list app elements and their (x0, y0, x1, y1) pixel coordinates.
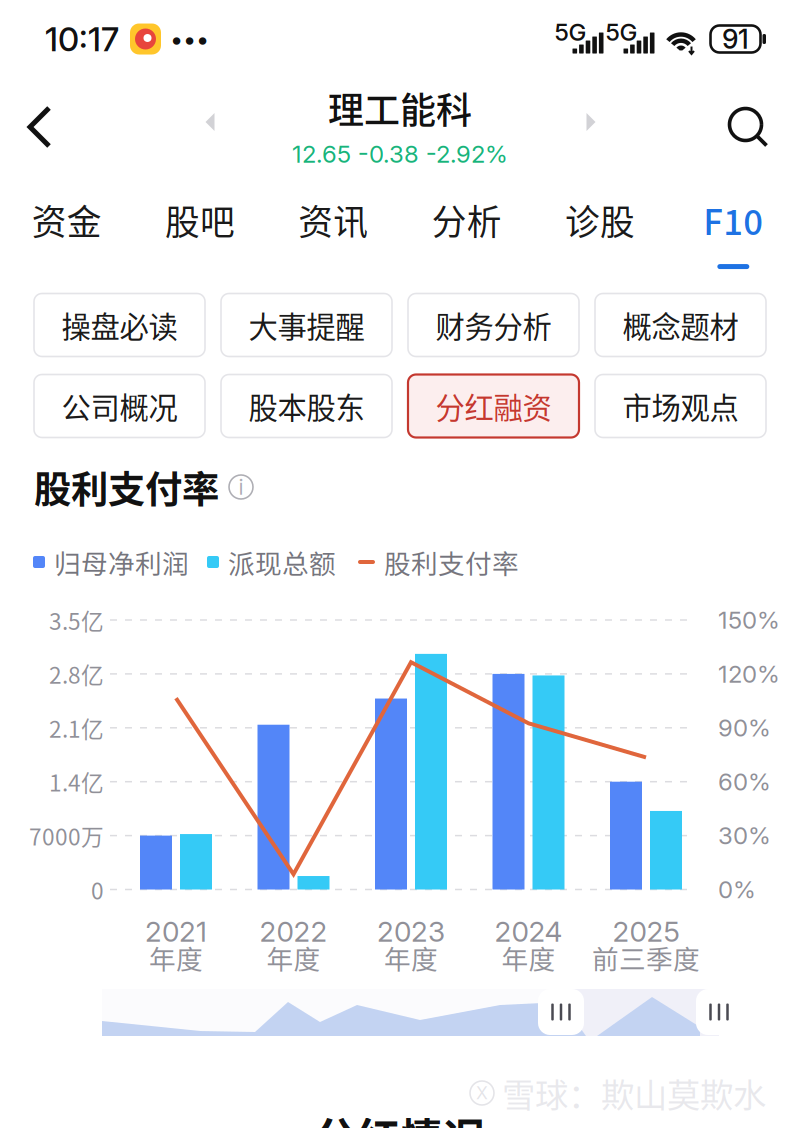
staticText: 1.4亿 (49, 765, 104, 798)
staticText: 分红情况 (314, 1105, 486, 1128)
button[interactable]: Range start (538, 989, 584, 1035)
staticText: 7000万 (29, 819, 104, 852)
staticText: 理工能科 (328, 82, 472, 134)
button[interactable]: 分红融资 (408, 374, 579, 437)
staticText: 分红融资 (435, 385, 551, 427)
staticText: 0% (718, 875, 756, 904)
staticText: 120% (718, 659, 780, 688)
button[interactable]: Back (19, 97, 79, 157)
staticText: 5G (554, 17, 586, 46)
button[interactable]: 大事提醒 (221, 293, 392, 356)
staticText: 3.5亿 (49, 604, 104, 636)
button[interactable]: 股本股东 (221, 374, 392, 437)
staticText: 2.8亿 (49, 657, 104, 690)
staticText: X (476, 1082, 488, 1103)
staticText: 150% (718, 605, 780, 634)
button[interactable]: 财务分析 (408, 293, 579, 356)
staticText: 诊股 (565, 195, 635, 245)
button[interactable]: 资讯 (267, 187, 400, 277)
staticText: 操盘必读 (61, 304, 177, 346)
staticText: 派现总额 (228, 543, 336, 581)
button[interactable]: 资金 (0, 187, 133, 277)
staticText: 资金 (32, 195, 102, 245)
button[interactable]: F10 (667, 187, 800, 277)
staticText: 资讯 (298, 195, 368, 245)
staticText: 年度 (501, 938, 555, 977)
staticText: 90% (718, 713, 771, 742)
staticText: 年度 (384, 938, 438, 977)
staticText: 归母净利润 (54, 543, 189, 581)
staticText: 大事提醒 (248, 304, 364, 346)
staticText: 10:17 (45, 19, 119, 59)
staticText: 概念题材 (622, 304, 738, 346)
staticText: 2024 (494, 915, 562, 948)
staticText: 市场观点 (622, 385, 738, 427)
button[interactable]: 公司概况 (34, 374, 205, 437)
button[interactable]: 操盘必读 (34, 293, 205, 356)
staticText: 财务分析 (435, 304, 551, 346)
staticText: 91 (722, 23, 749, 55)
button[interactable]: 分析 (400, 187, 533, 277)
staticText: 60% (718, 767, 771, 796)
staticText: ••• (170, 24, 209, 53)
staticText: 2025 (612, 915, 679, 948)
staticText: 分析 (432, 195, 502, 245)
staticText: 30% (718, 821, 771, 850)
button[interactable]: Search (719, 98, 775, 154)
staticText: 5G (605, 17, 637, 46)
staticText: 0 (91, 873, 104, 906)
staticText: 股利支付率 (384, 543, 519, 581)
button[interactable]: 股吧 (133, 187, 267, 277)
staticText: 2023 (377, 915, 445, 948)
staticText: 雪球：欺山莫欺水 (502, 1069, 766, 1117)
staticText: 股本股东 (248, 385, 364, 427)
staticText: 年度 (149, 938, 203, 977)
staticText: 公司概况 (61, 385, 177, 427)
staticText: 2021 (145, 915, 207, 948)
staticText: 股利支付率 (34, 460, 219, 514)
button[interactable]: 诊股 (533, 187, 667, 277)
button[interactable]: Range end (696, 989, 742, 1035)
staticText: 年度 (266, 938, 320, 977)
staticText: 2.1亿 (49, 711, 104, 744)
staticText: 12.65 -0.38 -2.92% (292, 139, 508, 168)
staticText: i (238, 474, 243, 500)
staticText: F10 (703, 195, 763, 245)
staticText: 前三季度 (592, 938, 700, 977)
staticText: 2022 (259, 915, 327, 948)
button[interactable]: 市场观点 (595, 374, 766, 437)
button[interactable]: 概念题材 (595, 293, 766, 356)
staticText: 股吧 (165, 195, 235, 245)
